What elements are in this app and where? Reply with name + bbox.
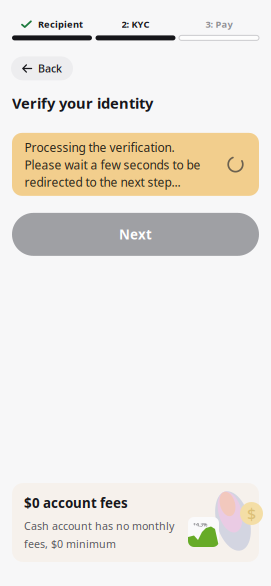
button[interactable]: Next: [12, 213, 259, 256]
staticText: Cash account has no monthly: [24, 519, 174, 533]
staticText: 2: KYC: [121, 18, 149, 30]
staticText: 3: Pay: [205, 18, 232, 30]
staticText: Next: [119, 225, 152, 243]
staticText: redirected to the next step...: [24, 174, 180, 190]
staticText: Please wait a few seconds to be: [24, 157, 200, 173]
staticText: +4.3%: [193, 521, 207, 528]
staticText: Back: [38, 61, 62, 75]
button[interactable]: Back: [11, 56, 73, 80]
staticText: Processing the verification.: [24, 139, 174, 155]
staticText: Verify your identity: [12, 93, 153, 113]
staticText: $0 account fees: [24, 494, 128, 512]
staticText: Recipient: [38, 18, 83, 30]
staticText: fees, $0 minimum: [24, 537, 116, 551]
staticText: $: [247, 503, 256, 524]
